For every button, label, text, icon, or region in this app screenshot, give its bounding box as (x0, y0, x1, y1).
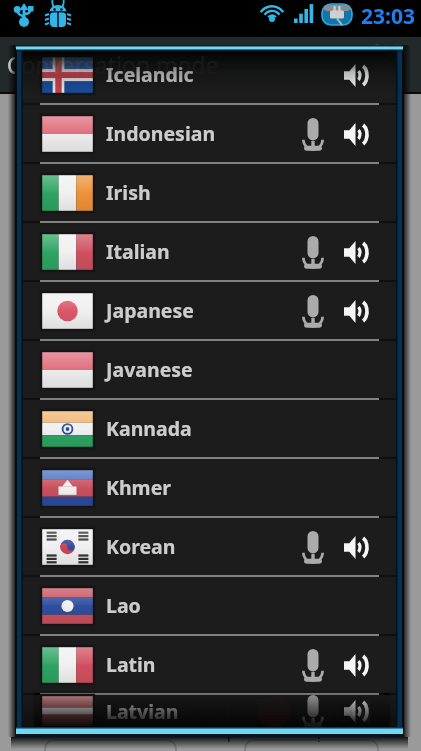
staticText: Kannada (106, 415, 192, 442)
staticText: Indonesian (106, 120, 216, 147)
button[interactable]: Icelandic (22, 50, 397, 103)
button[interactable]: Speak (296, 117, 330, 151)
staticText: Javanese (106, 356, 193, 383)
button[interactable]: Latin (22, 636, 397, 693)
button[interactable]: Listen (339, 117, 373, 151)
button[interactable]: Listen (339, 648, 373, 682)
button[interactable]: Speak (296, 530, 330, 564)
staticText: Latvian (106, 698, 179, 725)
button[interactable]: Javanese (22, 341, 397, 398)
button[interactable]: Kannada (22, 400, 397, 457)
staticText: Korean (106, 533, 176, 560)
button[interactable]: Speak (296, 695, 330, 727)
button[interactable]: Speak (296, 235, 330, 269)
button[interactable]: Listen (339, 695, 373, 727)
button[interactable]: Khmer (22, 459, 397, 516)
button[interactable]: Listen (339, 530, 373, 564)
button[interactable]: Speak (296, 648, 330, 682)
staticText: Icelandic (106, 61, 194, 88)
button[interactable]: Irish (22, 164, 397, 221)
button[interactable]: Italian (22, 223, 397, 280)
button[interactable]: Indonesian (22, 105, 397, 162)
button[interactable]: Japanese (22, 282, 397, 339)
button[interactable]: Listen (339, 58, 373, 92)
staticText: Khmer (106, 474, 171, 501)
button[interactable]: Latvian (22, 695, 397, 727)
button[interactable]: Listen (339, 235, 373, 269)
staticText: 23:03 (361, 2, 415, 31)
button[interactable]: Speak (296, 294, 330, 328)
button[interactable]: Listen (339, 294, 373, 328)
button[interactable]: Korean (22, 518, 397, 575)
staticText: Lao (106, 592, 141, 619)
staticText: Conversation mode (7, 49, 219, 80)
staticText: Italian (106, 238, 170, 265)
staticText: Irish (106, 179, 151, 206)
staticText: Japanese (106, 297, 194, 324)
button[interactable]: Lao (22, 577, 397, 634)
staticText: Latin (106, 651, 156, 678)
